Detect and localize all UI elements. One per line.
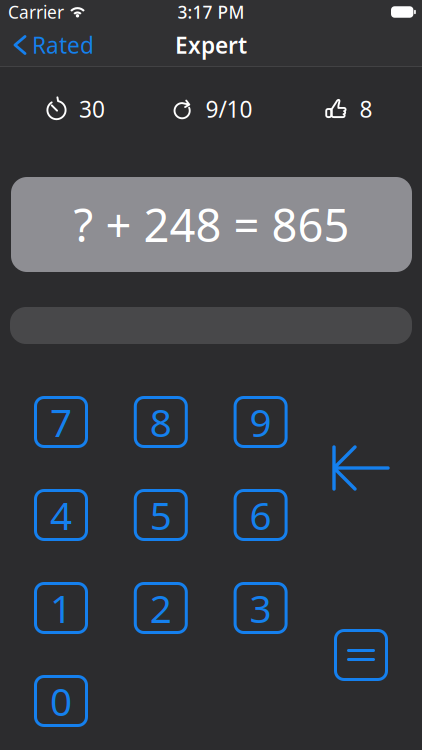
staticText: Carrier	[8, 0, 64, 23]
staticText: ? + 248 = 865	[73, 194, 349, 255]
staticText: 5	[150, 489, 172, 541]
staticText: 9	[250, 396, 272, 448]
staticText: 3:17 PM	[177, 0, 244, 23]
button[interactable]: 5	[134, 489, 188, 541]
staticText: 30	[79, 94, 105, 124]
staticText: 1	[50, 582, 72, 634]
staticText: Rated	[32, 30, 94, 60]
staticText: Expert	[175, 30, 247, 60]
staticText: 0	[50, 675, 72, 727]
button[interactable]: 0	[34, 675, 88, 727]
button[interactable]: Equals	[334, 629, 388, 681]
button[interactable]: Delete	[328, 441, 394, 495]
button[interactable]: 8	[134, 396, 188, 448]
button[interactable]: 9	[234, 396, 288, 448]
button[interactable]: 7	[34, 396, 88, 448]
button[interactable]: 4	[34, 489, 88, 541]
staticText: 8	[150, 396, 172, 448]
staticText: 8	[359, 94, 372, 124]
button[interactable]: 3	[234, 582, 288, 634]
staticText: 4	[50, 489, 72, 541]
staticText: 9/10	[205, 94, 252, 124]
staticText: 2	[150, 582, 172, 634]
button[interactable]: 6	[234, 489, 288, 541]
staticText: 7	[50, 396, 72, 448]
button[interactable]: 2	[134, 582, 188, 634]
button[interactable]: Rated	[0, 24, 104, 66]
button[interactable]: 1	[34, 582, 88, 634]
staticText: 3	[250, 582, 272, 634]
staticText: 6	[250, 489, 272, 541]
